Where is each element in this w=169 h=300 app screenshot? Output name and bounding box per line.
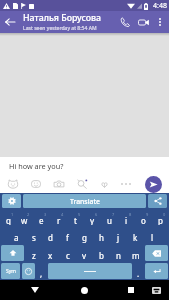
button[interactable]: Hi how are you? [0, 157, 169, 175]
staticText: s [32, 232, 36, 243]
button[interactable]: 2 [17, 210, 32, 225]
staticText: n [116, 250, 121, 261]
staticText: 3 [44, 212, 47, 217]
staticText: w [21, 215, 28, 225]
staticText: 4:48 [153, 1, 167, 11]
button[interactable]: v [77, 245, 92, 261]
button[interactable]: 9 [136, 210, 151, 225]
button[interactable]: 1 [1, 210, 15, 225]
staticText: Translate [70, 197, 100, 206]
button[interactable]: n [111, 245, 126, 261]
staticText: t [74, 215, 77, 225]
button[interactable]: Наталья Борусова [20, 11, 115, 33]
button[interactable]: Voice message [93, 175, 116, 193]
staticText: o [141, 215, 146, 225]
button[interactable]: s [26, 227, 41, 243]
staticText: 7 [112, 212, 115, 217]
staticText: 2 [27, 212, 30, 217]
staticText: g [82, 232, 87, 243]
staticText: q [6, 215, 11, 225]
button[interactable]: More [116, 175, 136, 193]
button[interactable]: Enter [145, 263, 168, 279]
button[interactable]: c [60, 245, 75, 261]
button[interactable]: Backspace [145, 245, 168, 261]
staticText: r [57, 215, 61, 225]
staticText: Sym [6, 268, 16, 275]
button[interactable]: Symbols [1, 263, 20, 279]
staticText: 9 [146, 212, 149, 217]
staticText: e [39, 215, 44, 225]
staticText: j [117, 232, 120, 243]
button[interactable]: Shift [1, 245, 24, 261]
staticText: c [66, 250, 70, 261]
staticText: Наталья Борусова [23, 12, 102, 24]
button[interactable]: Back [23, 280, 47, 300]
staticText: v [82, 250, 87, 261]
staticText: 6 [95, 212, 98, 217]
button[interactable]: k [128, 227, 143, 243]
button[interactable]: Translate [23, 194, 146, 208]
staticText: , [40, 268, 43, 279]
staticText: y [90, 215, 95, 225]
button[interactable]: Call [115, 11, 134, 33]
staticText: i [125, 215, 128, 225]
button[interactable]: Camera [47, 175, 70, 193]
button[interactable]: l [145, 227, 160, 243]
button[interactable]: x [43, 245, 58, 261]
staticText: z [32, 250, 36, 261]
button[interactable]: d [43, 227, 58, 243]
staticText: 0 [163, 212, 166, 217]
button[interactable]: 3 [34, 210, 49, 225]
button[interactable]: Back [0, 11, 20, 33]
staticText: f [66, 232, 69, 243]
staticText: p [158, 215, 163, 225]
staticText: Last seen yesterday at 8:54 AM [23, 25, 97, 32]
staticText: 8 [129, 212, 132, 217]
button[interactable]: a [9, 227, 24, 243]
button[interactable]: Home [72, 280, 97, 300]
staticText: h [99, 232, 104, 243]
button[interactable]: More options [153, 11, 167, 33]
button[interactable]: 7 [102, 210, 117, 225]
button[interactable]: j [111, 227, 126, 243]
staticText: Hi how are you? [9, 161, 64, 171]
button[interactable]: 8 [119, 210, 134, 225]
button[interactable]: . [134, 263, 143, 279]
staticText: d [48, 232, 53, 243]
button[interactable]: Emoji [24, 175, 47, 193]
button[interactable]: h [94, 227, 109, 243]
button[interactable]: b [94, 245, 109, 261]
staticText: 4 [61, 212, 64, 217]
staticText: . [137, 268, 140, 279]
button[interactable]: 6 [85, 210, 100, 225]
button[interactable]: , [37, 263, 46, 279]
staticText: 5 [78, 212, 81, 217]
button[interactable]: z [26, 245, 41, 261]
staticText: m [132, 250, 140, 261]
button[interactable]: Recent apps [119, 280, 143, 300]
button[interactable]: f [60, 227, 75, 243]
staticText: u [107, 215, 112, 225]
button[interactable]: 4 [51, 210, 66, 225]
staticText: l [151, 232, 154, 243]
staticText: b [99, 250, 104, 261]
staticText: x [48, 250, 53, 261]
button[interactable]: Doodle [70, 175, 93, 193]
staticText: a [14, 232, 19, 243]
button[interactable]: Settings [2, 194, 21, 208]
staticText: k [133, 232, 138, 243]
button[interactable]: m [128, 245, 143, 261]
button[interactable]: Space [48, 263, 132, 279]
button[interactable]: Emoji [22, 263, 35, 279]
button[interactable]: 0 [153, 210, 168, 225]
button[interactable]: Stickers [1, 175, 24, 193]
button[interactable]: Send [145, 176, 162, 193]
button[interactable]: Share [148, 194, 167, 208]
button[interactable]: g [77, 227, 92, 243]
staticText: 1 [11, 212, 14, 217]
button[interactable]: Switch keyboard [146, 280, 166, 300]
button[interactable]: 5 [68, 210, 83, 225]
button[interactable]: Video call [134, 11, 153, 33]
